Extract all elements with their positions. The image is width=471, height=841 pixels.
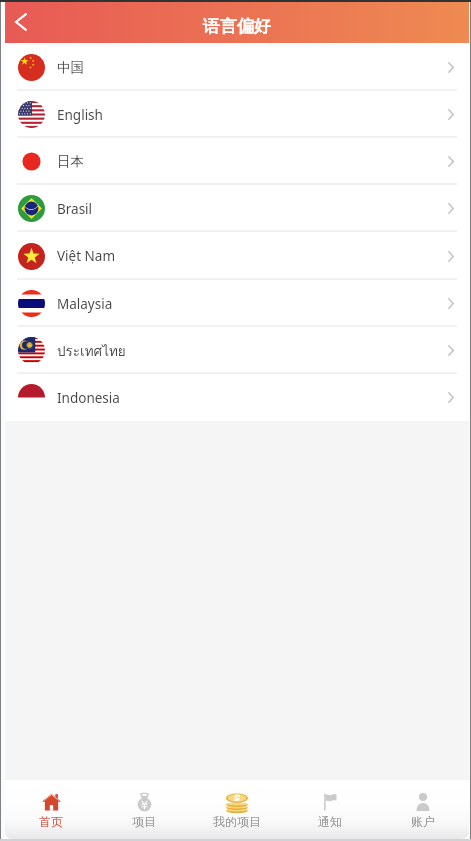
staticText: 语言偏好 <box>203 16 271 37</box>
button[interactable]: Back <box>5 2 37 43</box>
staticText: ประเทศไทย <box>57 340 126 361</box>
button[interactable]: Brasil <box>5 185 469 232</box>
button[interactable]: 我的项目 <box>190 780 283 839</box>
button[interactable]: Việt Nam <box>5 232 469 280</box>
button[interactable]: 首页 <box>5 780 97 839</box>
button[interactable]: 账户 <box>376 780 469 839</box>
button[interactable]: Indonesia <box>5 374 469 421</box>
button[interactable]: ประเทศไทย <box>5 327 469 374</box>
button[interactable]: 通知 <box>283 780 376 839</box>
button[interactable]: 日本 <box>5 138 469 185</box>
staticText: 项目 <box>132 814 156 829</box>
button[interactable]: English <box>5 91 469 138</box>
staticText: Indonesia <box>57 389 120 407</box>
staticText: English <box>57 106 103 124</box>
staticText: Brasil <box>57 200 93 218</box>
button[interactable]: 项目 <box>97 780 190 839</box>
staticText: Việt Nam <box>57 247 116 265</box>
staticText: 日本 <box>57 153 84 170</box>
button[interactable]: Malaysia <box>5 280 469 327</box>
staticText: 首页 <box>39 814 63 829</box>
staticText: 我的项目 <box>213 814 261 829</box>
staticText: Malaysia <box>57 295 113 313</box>
button[interactable]: 中国 <box>5 43 469 91</box>
staticText: 中国 <box>57 59 84 76</box>
staticText: 通知 <box>318 814 342 829</box>
staticText: 账户 <box>411 814 435 829</box>
